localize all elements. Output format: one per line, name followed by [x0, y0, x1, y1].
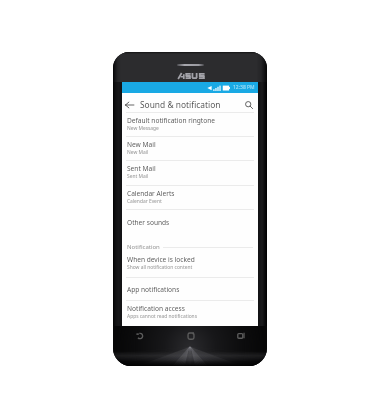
button[interactable]: Search [243, 99, 255, 111]
staticText: Apps cannot read notifications [127, 313, 197, 320]
staticText: New Message [127, 125, 159, 132]
staticText: Sent Mail [127, 164, 156, 173]
button[interactable]: Notification access [122, 301, 258, 325]
button[interactable]: Sent Mail [122, 161, 258, 186]
staticText: Calendar Event [127, 198, 162, 205]
staticText: New Mail [127, 140, 156, 149]
button[interactable]: Back [123, 99, 135, 111]
button[interactable]: Default notification ringtone [122, 113, 258, 137]
button[interactable]: App notifications [122, 278, 258, 301]
button[interactable]: Home [184, 329, 197, 342]
staticText: Notification access [127, 304, 185, 313]
staticText: New Mail [127, 149, 149, 156]
staticText: Show all notification content [127, 264, 193, 271]
staticText: Notification [127, 243, 160, 251]
staticText: Sound & notification [140, 99, 221, 110]
button[interactable]: Recent apps [234, 329, 247, 342]
staticText: When device is locked [127, 255, 195, 264]
button[interactable]: New Mail [122, 137, 258, 161]
staticText: 12:38 PM [233, 84, 255, 91]
staticText: Default notification ringtone [127, 116, 215, 125]
staticText: Calendar Alerts [127, 189, 175, 198]
staticText: App notifications [127, 285, 180, 294]
button[interactable]: Back [133, 329, 146, 342]
button[interactable]: Calendar Alerts [122, 186, 258, 210]
staticText: Other sounds [127, 218, 170, 227]
button[interactable]: When device is locked [122, 252, 258, 278]
staticText: Sent Mail [127, 173, 149, 180]
button[interactable]: Other sounds [122, 210, 258, 234]
